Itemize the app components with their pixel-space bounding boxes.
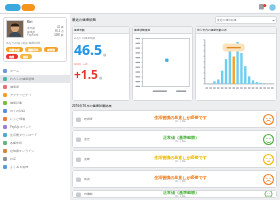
button[interactable]: Home logo [5, 2, 35, 13]
button[interactable]: 喫煙 [6, 54, 18, 59]
staticText: PepUpポイント [10, 125, 32, 129]
button[interactable]: 健康度 [0, 83, 70, 91]
staticText: 健康状態推移 [134, 28, 151, 31]
button[interactable]: 体重管理 [6, 47, 23, 52]
button[interactable]: 肥満度 [72, 110, 277, 128]
staticText: 詳しく見る [175, 140, 187, 143]
staticText: 運動不足 [28, 48, 39, 51]
button[interactable]: 生活費ダウンロード [0, 131, 70, 139]
staticText: Kiri [27, 20, 33, 24]
staticText: 詳しく見る [175, 195, 187, 198]
staticText: 体重管理 [9, 48, 20, 51]
button[interactable]: 各種申請 [0, 139, 70, 147]
staticText: PepPoint [27, 33, 39, 37]
staticText: 肝機能 [84, 192, 100, 196]
button[interactable]: 証明書オンライン [0, 147, 70, 155]
staticText: 喫煙 [9, 55, 15, 58]
staticText: 46.5 [74, 40, 102, 59]
staticText: 証明書オンライン [10, 149, 35, 153]
staticText: 生活習慣の見直しが必要です [154, 115, 207, 120]
button[interactable]: 肥満度 の詳細 [263, 114, 274, 125]
button[interactable]: わたしの健康状態 [0, 75, 70, 83]
staticText: 日々の記録 [10, 109, 26, 113]
button[interactable]: よくある質問 [0, 163, 70, 171]
button[interactable]: 飲酒 [20, 54, 32, 59]
staticText: わたしの健康状態 [10, 77, 35, 81]
staticText: 前回比（6月） [74, 62, 90, 65]
staticText: 生活費ダウンロード [10, 133, 38, 137]
staticText: 正常値（基準範囲） [163, 190, 199, 195]
button[interactable]: PepUpポイント [0, 123, 70, 131]
staticText: 生活習慣の見直しが必要です [154, 175, 207, 180]
staticText: 健康年齢 [74, 28, 85, 31]
staticText: あなたの健康年齢 [74, 36, 95, 39]
staticText: 生活習慣の見直しが必要です [154, 155, 207, 160]
staticText: 脂質 [84, 177, 100, 181]
button[interactable]: 血圧 [72, 130, 277, 148]
staticText: 最近の健康状態 [72, 18, 96, 22]
staticText: 設定 [10, 157, 16, 161]
staticText: 健康度 [27, 30, 36, 33]
staticText: ホーム [10, 69, 20, 73]
button[interactable]: アクティビティ [0, 91, 70, 99]
staticText: 食習慣 [47, 48, 55, 51]
staticText: 42 歳 [57, 25, 64, 29]
staticText: 同じ年代の健康年齢分布 [197, 28, 227, 31]
staticText: アクティビティ [10, 93, 32, 97]
staticText: 詳しく見る [175, 160, 187, 163]
button[interactable]: 直近の健診結果 [215, 16, 277, 24]
staticText: 直近の健診結果 [217, 18, 237, 22]
staticText: 3480 pt [54, 33, 64, 37]
button[interactable]: Account menu [269, 4, 276, 11]
button[interactable]: 健康記事 [0, 99, 70, 107]
button[interactable]: 肝機能 の詳細 [263, 190, 274, 198]
staticText: 肥満度 [84, 117, 100, 121]
staticText: 詳しく見る [175, 120, 187, 123]
staticText: 歳 [99, 76, 102, 80]
button[interactable]: 設定 [0, 155, 70, 163]
button[interactable]: 血圧 の詳細 [263, 134, 274, 145]
staticText: あなたの取り組む健康目標 [6, 41, 40, 45]
staticText: 65.2 点 [55, 29, 64, 33]
button[interactable]: 運動不足 [25, 47, 42, 52]
staticText: 血圧 [84, 137, 100, 141]
staticText: レシピ情報 [10, 117, 26, 121]
button[interactable]: 日々の記録 [0, 107, 70, 115]
button[interactable]: ホーム [0, 67, 70, 75]
staticText: 健康度 [10, 85, 19, 89]
button[interactable]: 血糖 [72, 150, 277, 168]
staticText: 詳しく見る [175, 180, 187, 183]
staticText: よくある質問 [10, 165, 29, 169]
staticText: 飲酒 [23, 55, 29, 58]
staticText: 血糖 [84, 157, 100, 161]
staticText: 体年齢 [27, 26, 36, 29]
button[interactable]: Kiri [6, 20, 64, 59]
button[interactable]: Notifications [259, 4, 266, 11]
staticText: 健康記事 [10, 101, 22, 105]
button[interactable]: 脂質 の詳細 [263, 174, 274, 185]
button[interactable]: 脂質 [72, 170, 277, 188]
staticText: 各種申請 [10, 141, 22, 145]
button[interactable]: レシピ情報 [0, 115, 70, 123]
button[interactable]: 肝機能 [72, 190, 277, 198]
staticText: 歳 [103, 53, 106, 57]
button[interactable]: 血糖 の詳細 [263, 154, 274, 165]
button[interactable]: 食習慣 [44, 47, 58, 52]
staticText: 2016年10月の健康診断結果 [72, 104, 112, 108]
staticText: 正常値（基準範囲） [163, 135, 199, 140]
staticText: +1.5 [74, 66, 98, 82]
